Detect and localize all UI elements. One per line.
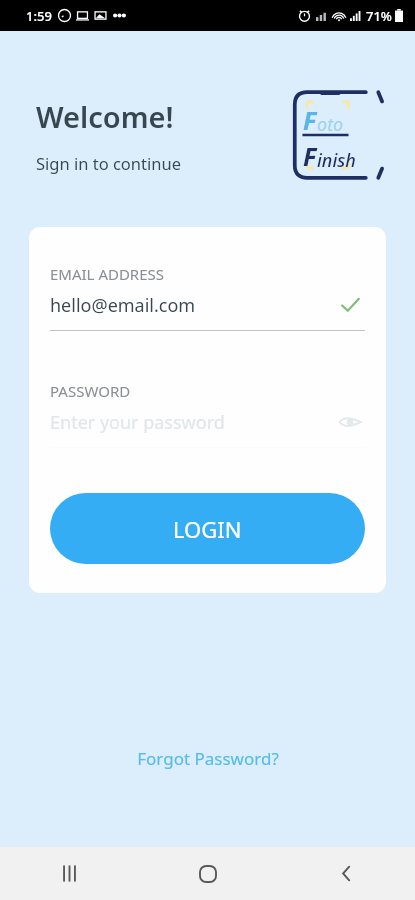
staticText: F <box>303 139 317 173</box>
staticText: Sign in to continue <box>36 152 181 174</box>
staticText: LOGIN <box>173 514 242 544</box>
staticText: PASSWORD <box>50 381 131 401</box>
button[interactable]: LOGIN <box>50 493 365 564</box>
staticText: oto <box>317 112 344 137</box>
button[interactable]: Email verified <box>335 290 365 320</box>
button[interactable]: Show password <box>335 407 365 437</box>
button[interactable]: Forgot Password? <box>125 741 291 776</box>
staticText: hello@email.com <box>50 293 335 318</box>
button[interactable]: Back <box>277 847 415 900</box>
staticText: F <box>303 103 317 137</box>
staticText: EMAIL ADDRESS <box>50 264 165 284</box>
button[interactable]: Home <box>139 847 277 900</box>
button[interactable]: Recents <box>0 847 139 900</box>
staticText: Forgot Password? <box>137 747 279 770</box>
staticText: Enter your password <box>50 410 335 435</box>
staticText: Welcome! <box>36 97 174 136</box>
staticText: 1:59 <box>26 7 52 25</box>
staticText: 71% <box>366 7 392 25</box>
staticText: inish <box>317 148 356 173</box>
